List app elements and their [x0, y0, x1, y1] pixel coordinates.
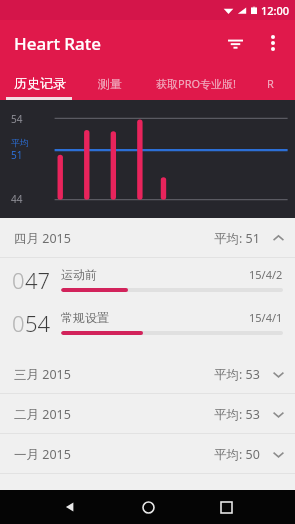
staticText: 测量 [98, 76, 122, 91]
staticText: 15/4/2 [249, 267, 283, 282]
button[interactable]: Filter [215, 23, 255, 63]
staticText: 平均: 53 [214, 406, 260, 423]
staticText: 历史记录 [14, 75, 66, 91]
button[interactable]: 四月 2015 [0, 218, 295, 258]
staticText: 获取PRO专业版! [156, 76, 237, 91]
staticText: 运动前 [61, 267, 97, 282]
staticText: 常规设置 [61, 310, 109, 325]
staticText: 15/4/1 [249, 310, 283, 325]
button[interactable]: 0 [0, 258, 295, 301]
staticText: RUNTASTI [267, 76, 281, 91]
button[interactable]: Back [50, 490, 90, 524]
staticText: 12:00 [261, 3, 290, 18]
staticText: 44 [11, 192, 23, 206]
button[interactable]: 历史记录 [0, 66, 80, 100]
staticText: 47 [25, 265, 51, 295]
staticText: 54 [11, 112, 23, 126]
staticText: 平均 [11, 137, 29, 148]
staticText: 四月 2015 [14, 230, 71, 247]
staticText: 0 [12, 265, 25, 295]
staticText: 0 [12, 308, 25, 338]
button[interactable]: 0 [0, 301, 295, 344]
staticText: 51 [11, 148, 23, 162]
staticText: 平均: 50 [214, 446, 260, 463]
button[interactable]: 一月 2015 [0, 434, 295, 474]
button[interactable]: Home [128, 490, 168, 524]
button[interactable]: 三月 2015 [0, 354, 295, 394]
staticText: 二月 2015 [14, 406, 71, 423]
staticText: 平均: 51 [214, 230, 260, 247]
button[interactable]: 测量 [80, 66, 140, 100]
button[interactable]: More options [255, 25, 291, 61]
staticText: 三月 2015 [14, 366, 71, 383]
staticText: 一月 2015 [14, 446, 71, 463]
staticText: Heart Rate [14, 32, 102, 55]
button[interactable]: 二月 2015 [0, 394, 295, 434]
button[interactable]: 获取PRO专业版! [140, 66, 253, 100]
staticText: 54 [25, 308, 51, 338]
button[interactable]: Recent apps [206, 490, 246, 524]
staticText: 平均: 53 [214, 366, 260, 383]
button[interactable]: RUNTASTI [253, 66, 295, 100]
